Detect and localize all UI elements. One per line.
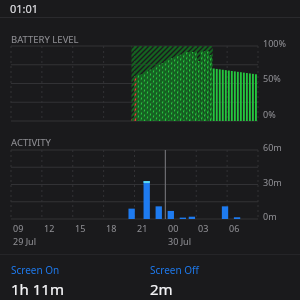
- button[interactable]: Screen On: [11, 263, 64, 297]
- button[interactable]: Screen Off: [150, 263, 199, 297]
- staticText: 06: [229, 222, 240, 234]
- staticText: 60m: [263, 141, 282, 153]
- staticText: 2m: [150, 279, 173, 299]
- staticText: Screen Off: [150, 263, 199, 277]
- staticText: 29 Jul: [13, 235, 36, 247]
- staticText: 1h 11m: [11, 279, 64, 299]
- staticText: 00: [168, 222, 179, 234]
- staticText: 09: [13, 222, 24, 234]
- staticText: 03: [198, 222, 209, 234]
- staticText: 30m: [263, 176, 282, 188]
- staticText: 0%: [263, 108, 276, 120]
- staticText: 50%: [263, 72, 281, 84]
- staticText: 12: [44, 222, 55, 234]
- staticText: BATTERY LEVEL: [11, 33, 79, 46]
- staticText: Screen On: [11, 263, 60, 277]
- button[interactable]: [11, 46, 258, 121]
- staticText: 30 Jul: [168, 235, 191, 247]
- staticText: 01:01: [10, 1, 39, 16]
- staticText: 15: [75, 222, 86, 234]
- staticText: 18: [106, 222, 117, 234]
- button[interactable]: [11, 150, 258, 219]
- staticText: 100%: [263, 37, 286, 49]
- staticText: ACTIVITY: [11, 136, 51, 149]
- staticText: 0m: [263, 210, 277, 222]
- staticText: 21: [137, 222, 148, 234]
